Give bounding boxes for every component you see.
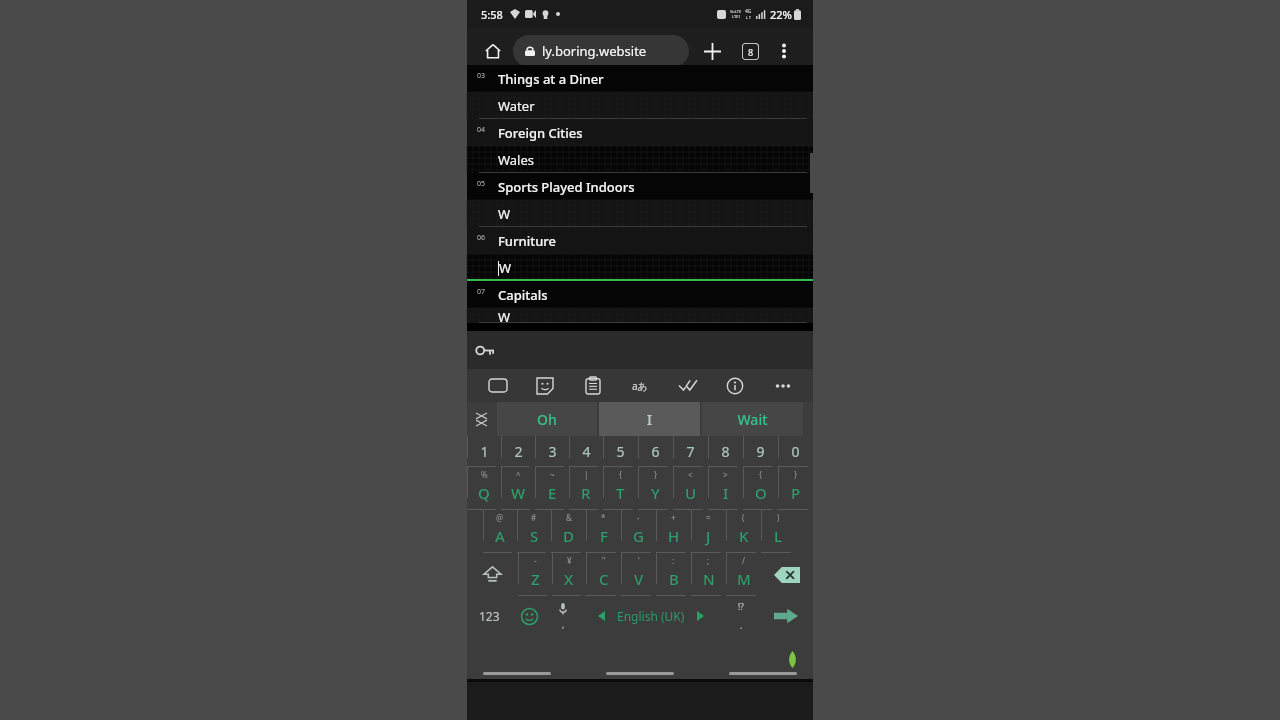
button[interactable]: Voice input — [546, 596, 580, 636]
staticText: VoLTE — [730, 9, 742, 14]
button[interactable]: 03 — [467, 65, 813, 119]
button[interactable]: 2 — [501, 436, 535, 467]
staticText: R — [581, 483, 591, 503]
button[interactable]: More options — [769, 36, 799, 66]
button[interactable]: !? — [722, 596, 759, 636]
button[interactable]: 05 — [467, 173, 813, 227]
button[interactable]: } — [638, 467, 673, 510]
staticText: T — [616, 483, 625, 503]
button[interactable]: ¥ — [552, 553, 586, 596]
button[interactable]: Backspace — [761, 553, 813, 596]
button[interactable]: 1 — [467, 436, 501, 467]
staticText: !? — [738, 601, 744, 612]
button[interactable]: ( — [726, 510, 761, 553]
staticText: 06 — [477, 233, 486, 243]
button[interactable]: > — [708, 467, 743, 510]
button[interactable]: / — [726, 553, 761, 596]
button[interactable]: Info — [718, 369, 752, 402]
staticText: # — [531, 512, 537, 523]
staticText: 07 — [477, 287, 486, 297]
button[interactable]: New tab — [695, 34, 729, 68]
button[interactable]: } — [778, 467, 813, 510]
button[interactable]: | — [569, 467, 603, 510]
staticText: / — [742, 555, 745, 566]
staticText: Oh — [537, 410, 557, 429]
staticText: 22% — [770, 7, 792, 22]
staticText: - — [534, 555, 537, 566]
staticText: 8 — [748, 46, 754, 58]
button[interactable]: * — [586, 510, 621, 553]
staticText: X — [564, 569, 574, 589]
staticText: English (UK) — [617, 608, 685, 624]
button[interactable]: 5 — [603, 436, 638, 467]
button[interactable]: < — [673, 467, 708, 510]
button[interactable]: & — [551, 510, 586, 553]
staticText: C — [599, 569, 609, 589]
button[interactable]: Spell check — [671, 369, 705, 402]
button[interactable]: Wait — [702, 402, 803, 436]
staticText: V — [634, 569, 644, 589]
button[interactable]: - — [621, 510, 656, 553]
button[interactable]: 7 — [673, 436, 708, 467]
button[interactable]: Collapse suggestions — [467, 402, 496, 436]
button[interactable]: 6 — [638, 436, 673, 467]
button[interactable]: Shift — [467, 553, 518, 596]
button[interactable]: More — [766, 369, 800, 402]
button[interactable]: " — [586, 553, 621, 596]
staticText: Q — [478, 483, 490, 503]
button[interactable]: Emoji — [512, 596, 546, 636]
button[interactable]: 8 — [708, 436, 743, 467]
button[interactable]: Oh — [497, 402, 597, 436]
button[interactable]: Passwords — [467, 331, 503, 369]
staticText: 4 — [582, 442, 591, 461]
button[interactable]: ~ — [535, 467, 569, 510]
button[interactable]: { — [603, 467, 638, 510]
button[interactable]: ^ — [501, 467, 535, 510]
staticText: ; — [707, 555, 710, 566]
button[interactable]: ' — [621, 553, 656, 596]
staticText: 0 — [791, 442, 800, 461]
button[interactable]: Enter — [759, 596, 813, 636]
button[interactable]: 07 — [467, 281, 813, 323]
staticText: B — [669, 569, 679, 589]
button[interactable]: GIF — [481, 369, 515, 402]
staticText: 123 — [479, 608, 500, 624]
button[interactable]: = — [691, 510, 726, 553]
button[interactable]: Navigation — [483, 672, 551, 675]
button[interactable]: Tabs — [733, 34, 767, 68]
button[interactable]: 04 — [467, 119, 813, 173]
button[interactable]: + — [656, 510, 691, 553]
button[interactable]: ly.boring.website — [513, 35, 689, 67]
staticText: ^ — [516, 469, 521, 480]
button[interactable]: Clipboard — [576, 369, 610, 402]
button[interactable]: 3 — [535, 436, 569, 467]
staticText: ↓↑ — [745, 15, 752, 20]
button[interactable]: : — [656, 553, 691, 596]
staticText: W — [499, 259, 512, 277]
button[interactable]: Home — [477, 35, 509, 67]
button[interactable]: Navigation — [729, 672, 797, 675]
button[interactable]: I — [599, 402, 700, 436]
button[interactable]: 06 — [467, 227, 813, 281]
button[interactable]: { — [743, 467, 778, 510]
button[interactable]: # — [517, 510, 551, 553]
button[interactable]: % — [467, 467, 501, 510]
staticText: 4G — [745, 8, 752, 15]
button[interactable]: @ — [483, 510, 517, 553]
staticText: W — [498, 308, 511, 323]
button[interactable]: ) — [761, 510, 796, 553]
button[interactable]: English (UK) — [580, 596, 722, 636]
button[interactable]: ; — [691, 553, 726, 596]
button[interactable]: 4 — [569, 436, 603, 467]
staticText: = — [706, 512, 711, 523]
button[interactable]: 123 — [467, 596, 512, 636]
staticText: { — [619, 469, 623, 480]
button[interactable]: - — [518, 553, 552, 596]
button[interactable]: Translate — [623, 369, 657, 402]
button[interactable]: Navigation — [606, 672, 674, 675]
button[interactable]: 0 — [778, 436, 813, 467]
staticText: Furniture — [498, 232, 557, 250]
button[interactable]: 9 — [743, 436, 778, 467]
button[interactable]: Stickers — [528, 369, 562, 402]
staticText: " — [602, 555, 606, 566]
